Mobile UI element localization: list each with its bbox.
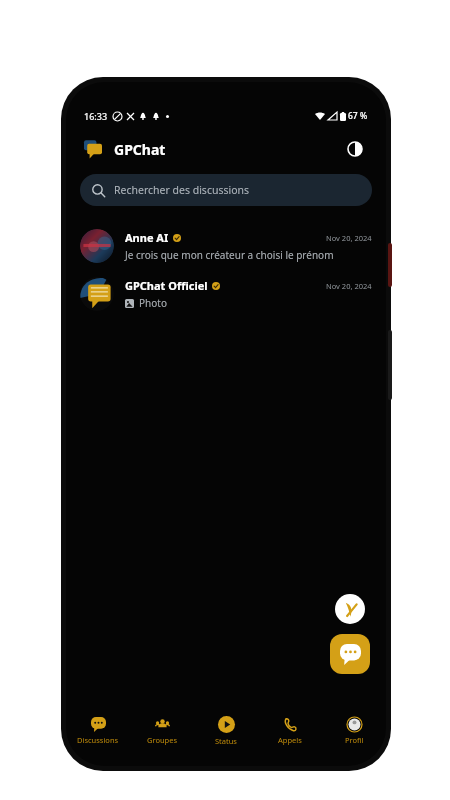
staticText: Anne AI — [125, 230, 169, 245]
button[interactable]: Status — [194, 710, 258, 752]
staticText: Nov 20, 2024 — [326, 233, 372, 243]
button[interactable]: Rechercher des discussions — [80, 174, 372, 206]
button[interactable]: Anne AI — [66, 222, 386, 270]
staticText: 67 % — [348, 110, 368, 122]
staticText: Nov 20, 2024 — [326, 281, 372, 291]
staticText: 16:33 — [84, 110, 108, 122]
button[interactable]: Changer le thème — [342, 136, 368, 162]
button[interactable]: Profil — [322, 710, 386, 752]
button[interactable]: Appels — [258, 710, 322, 752]
button[interactable]: Groupes — [130, 710, 194, 752]
staticText: GPChat — [114, 140, 166, 159]
staticText: GPChat Officiel — [125, 278, 208, 293]
staticText: Photo — [139, 296, 167, 310]
button[interactable]: GPChat Officiel — [66, 270, 386, 318]
staticText: Rechercher des discussions — [114, 183, 250, 197]
staticText: Profil — [345, 735, 364, 745]
staticText: Je crois que mon créateur a choisi le pr… — [125, 248, 334, 262]
button[interactable]: Discussions — [66, 710, 130, 752]
staticText: Appels — [278, 735, 302, 745]
staticText: Groupes — [147, 735, 178, 745]
staticText: Discussions — [77, 735, 119, 745]
button[interactable]: Assistant IA — [335, 594, 365, 624]
staticText: Status — [215, 736, 237, 746]
button[interactable]: Nouvelle discussion — [330, 634, 370, 674]
